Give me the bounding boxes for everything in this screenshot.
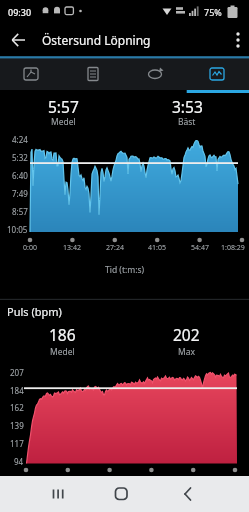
staticText: 202 bbox=[173, 324, 200, 344]
button[interactable] bbox=[36, 478, 80, 510]
staticText: 4:24 bbox=[12, 134, 28, 145]
staticText: 1:08:29 bbox=[221, 243, 245, 253]
staticText: 7:49 bbox=[12, 188, 28, 199]
staticText: 162 bbox=[10, 402, 24, 413]
button[interactable] bbox=[62, 58, 124, 90]
staticText: 75% bbox=[204, 6, 222, 18]
button[interactable] bbox=[166, 478, 210, 510]
staticText: 6:40 bbox=[12, 170, 28, 181]
staticText: 184 bbox=[10, 385, 24, 396]
staticText: 13:42 bbox=[63, 243, 81, 253]
staticText: 186 bbox=[49, 324, 76, 344]
staticText: 139 bbox=[10, 420, 24, 431]
staticText: 8:57 bbox=[12, 206, 28, 217]
staticText: 207 bbox=[10, 367, 24, 378]
staticText: 09:30 bbox=[8, 6, 32, 18]
staticText: Puls (bpm) bbox=[7, 304, 62, 319]
button[interactable] bbox=[187, 58, 249, 90]
button[interactable] bbox=[0, 58, 62, 90]
button[interactable] bbox=[99, 478, 143, 510]
staticText: Medel bbox=[51, 116, 76, 128]
button[interactable] bbox=[4, 26, 32, 54]
staticText: 94 bbox=[14, 456, 24, 467]
staticText: Max bbox=[178, 346, 195, 358]
staticText: Bäst bbox=[178, 116, 196, 128]
staticText: 0:00 bbox=[23, 243, 37, 253]
staticText: 117 bbox=[10, 438, 24, 449]
staticText: 54:47 bbox=[191, 243, 209, 253]
staticText: 5:32 bbox=[12, 152, 28, 163]
staticText: 27:24 bbox=[106, 243, 124, 253]
staticText: 41:05 bbox=[148, 243, 166, 253]
button[interactable] bbox=[226, 26, 248, 54]
button[interactable] bbox=[125, 58, 187, 90]
staticText: Medel bbox=[50, 346, 75, 358]
staticText: Östersund Löpning bbox=[42, 32, 151, 48]
staticText: Tid (t:m:s) bbox=[105, 264, 145, 276]
staticText: 10:05 bbox=[7, 224, 28, 235]
staticText: 5:57 bbox=[48, 96, 79, 116]
staticText: 3:53 bbox=[172, 96, 203, 116]
